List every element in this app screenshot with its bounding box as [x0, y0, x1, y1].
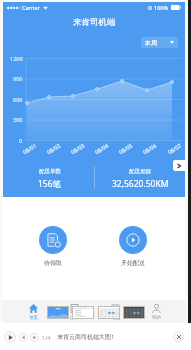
staticText: 1200: [10, 55, 23, 62]
staticText: 订单: [70, 315, 79, 321]
button[interactable]: 首页: [20, 304, 46, 323]
button[interactable]: Page 2: [73, 307, 93, 318]
button[interactable]: Close: [173, 331, 184, 342]
staticText: 08/06: [141, 142, 158, 155]
staticText: 32,5620.50KM: [112, 178, 169, 190]
button[interactable]: Next: [173, 160, 185, 171]
staticText: 首页: [29, 315, 38, 321]
button[interactable]: Play: [4, 331, 16, 343]
button[interactable]: 配送单数: [5, 168, 95, 190]
staticText: Carrier: [22, 4, 40, 11]
staticText: 08/07: [166, 142, 183, 155]
staticText: 1/4: [42, 334, 51, 341]
staticText: 0: [19, 137, 23, 144]
button[interactable]: 订单: [61, 304, 87, 323]
button[interactable]: Page 1: [48, 307, 68, 318]
staticText: 08/04: [93, 142, 110, 155]
button[interactable]: 待领取: [23, 226, 83, 267]
staticText: 08/02: [45, 142, 62, 155]
button[interactable]: 配送里程: [95, 168, 185, 190]
staticText: 我的: [152, 315, 161, 321]
staticText: 08/01: [21, 142, 38, 155]
staticText: 100%: [154, 4, 169, 11]
button[interactable]: Previous: [19, 333, 28, 342]
staticText: 300: [13, 116, 23, 123]
staticText: 08/05: [117, 142, 134, 155]
button[interactable]: 我的: [143, 304, 169, 323]
staticText: 配送里程: [129, 168, 151, 175]
button[interactable]: 开始配送: [103, 226, 163, 267]
staticText: 来肯司机端: [73, 17, 116, 28]
staticText: 来肯云商司机端大图1: [57, 333, 115, 341]
button[interactable]: 本周: [141, 37, 178, 48]
staticText: 600: [13, 96, 23, 103]
button[interactable]: Page 3: [99, 307, 119, 318]
staticText: 08/03: [69, 142, 86, 155]
staticText: 900: [13, 75, 23, 82]
staticText: 配送单数: [39, 168, 61, 175]
staticText: 本周: [145, 39, 157, 47]
staticText: 消息: [111, 315, 120, 321]
staticText: 待领取: [44, 259, 62, 267]
button[interactable]: 消息: [102, 304, 128, 323]
button[interactable]: Next: [30, 333, 39, 342]
staticText: 开始配送: [121, 259, 145, 267]
staticText: 156笔: [38, 178, 62, 190]
button[interactable]: Page 4: [124, 307, 144, 318]
